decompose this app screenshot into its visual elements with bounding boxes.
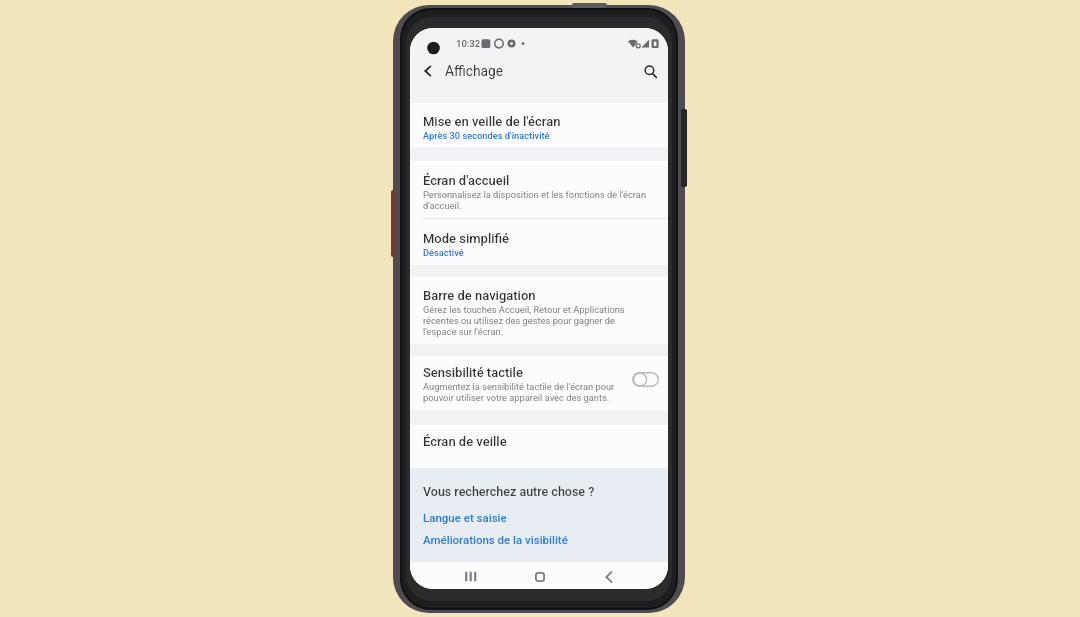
staticText: Écran d'accueil [423,173,510,188]
staticText: Gérez les touches Accueil, Retour et App… [423,304,625,337]
button[interactable]: Langue et saisie [418,507,512,527]
staticText: Personnalisez la disposition et les fonc… [423,189,647,211]
button[interactable]: Écran de veille [410,429,668,453]
button[interactable]: Améliorations de la visibilité [418,529,573,549]
staticText: Augmentez la sensibilité tactile de l'éc… [423,381,615,403]
button[interactable]: Search [641,62,659,80]
button[interactable]: Mode simplifié [410,226,668,250]
staticText: Désactivé [423,247,464,258]
button[interactable]: Barre de navigation [410,283,668,307]
button[interactable]: Mise en veille de l'écran [410,109,668,133]
button[interactable]: Sensibilité tactile [629,368,661,390]
staticText: Affichage [445,63,504,79]
button[interactable]: Écran d'accueil [410,168,668,192]
staticText: 10:32 [456,38,481,49]
staticText: Après 30 secondes d'inactivité [423,130,550,141]
staticText: Sensibilité tactile [423,365,523,380]
staticText: Mise en veille de l'écran [423,114,561,129]
staticText: Barre de navigation [423,288,536,303]
staticText: Vous recherchez autre chose ? [423,484,595,499]
staticText: Améliorations de la visibilité [423,533,568,546]
button[interactable]: Back [595,563,623,589]
button[interactable]: Recent apps [457,563,485,589]
staticText: Écran de veille [423,434,507,449]
staticText: Langue et saisie [423,511,507,524]
button[interactable]: Affichage [440,60,509,82]
button[interactable]: Home [526,563,554,589]
button[interactable]: Back [419,62,437,80]
button[interactable]: Sensibilité tactile [410,360,668,384]
staticText: Mode simplifié [423,231,510,246]
